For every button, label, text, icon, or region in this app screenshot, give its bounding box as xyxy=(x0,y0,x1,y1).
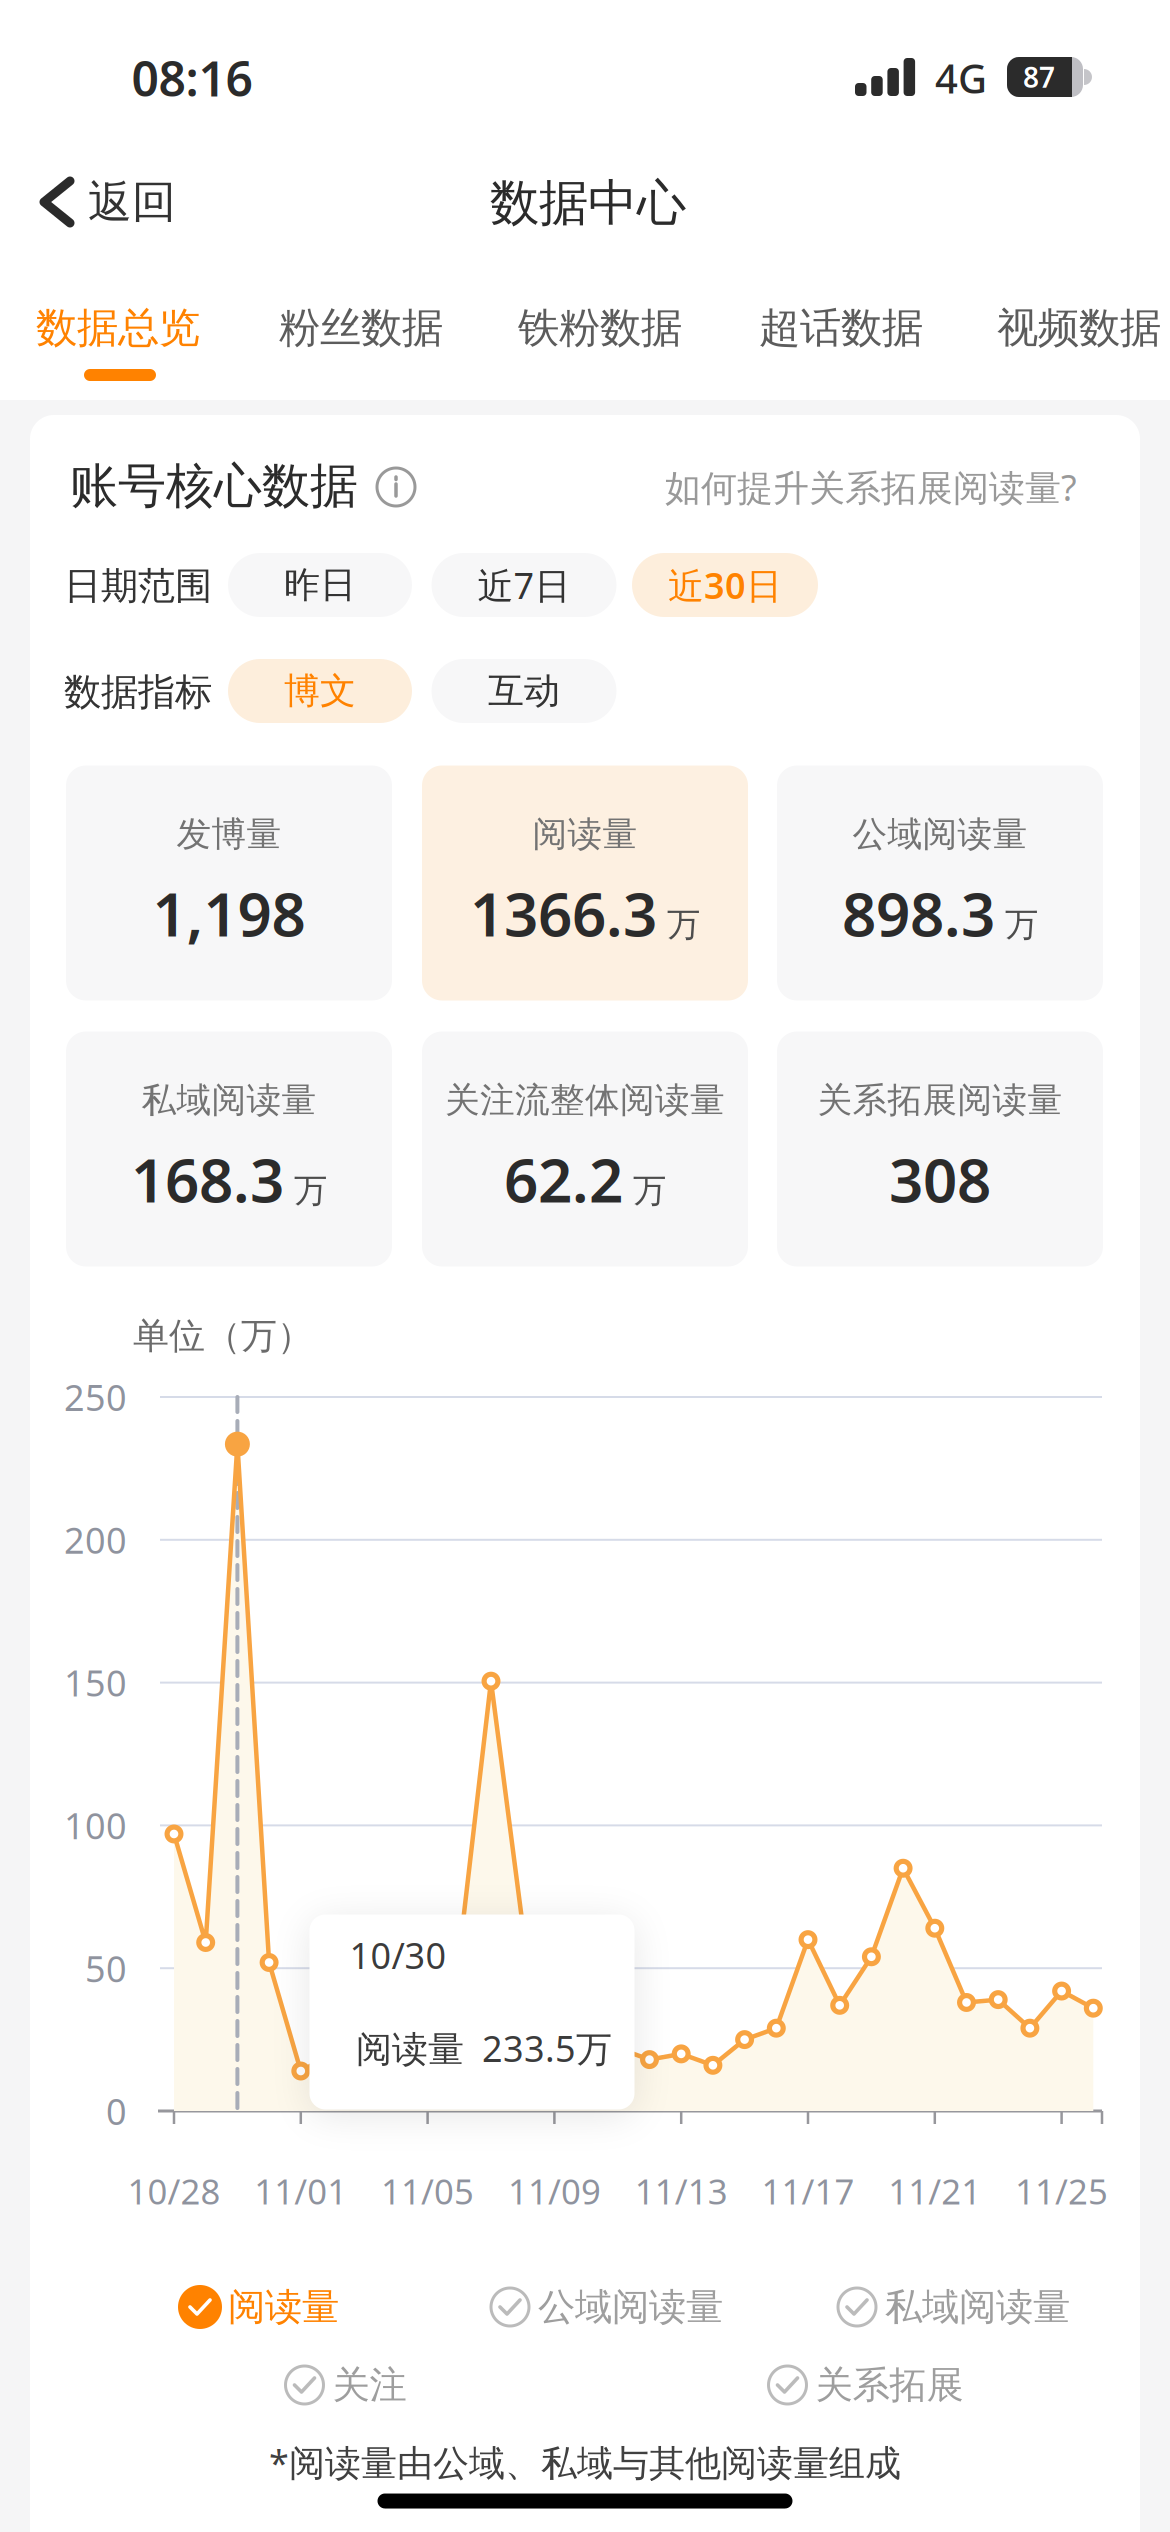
button[interactable]: 关注流整体阅读量 xyxy=(422,1031,748,1266)
staticText: 50 xyxy=(85,1944,127,1992)
staticText: 11/21 xyxy=(888,2168,981,2214)
staticText: 互动 xyxy=(488,669,560,713)
staticText: 日期范围 xyxy=(64,563,212,609)
staticText: 308 xyxy=(889,1139,991,1219)
staticText: 11/17 xyxy=(761,2168,854,2214)
staticText: 博文 xyxy=(284,669,356,713)
staticText: 数据中心 xyxy=(490,173,686,233)
staticText: 87 xyxy=(1023,58,1055,96)
staticText: 私域阅读量 xyxy=(885,2284,1070,2330)
staticText: 11/01 xyxy=(254,2168,347,2214)
staticText: 168.3 xyxy=(131,1139,284,1219)
button[interactable]: 关系拓展阅读量 xyxy=(777,1031,1103,1266)
staticText: 数据总览 xyxy=(36,303,200,353)
staticText: 1,198 xyxy=(152,873,305,953)
button[interactable]: 数据总览 xyxy=(18,283,218,373)
staticText: 阅读量 xyxy=(228,2284,339,2330)
button[interactable]: 阅读量 xyxy=(177,2284,339,2330)
staticText: 898.3 xyxy=(842,873,995,953)
staticText: 0 xyxy=(106,2087,127,2135)
button[interactable]: 昨日 xyxy=(228,553,412,617)
button[interactable]: 关系拓展 xyxy=(764,2362,963,2408)
staticText: 近30日 xyxy=(668,561,782,609)
staticText: 10/28 xyxy=(127,2168,220,2214)
staticText: 关系拓展 xyxy=(815,2362,963,2408)
staticText: 近7日 xyxy=(477,561,570,609)
button[interactable]: 核心数据说明 xyxy=(374,465,418,509)
staticText: 关系拓展阅读量 xyxy=(817,1079,1062,1121)
button[interactable]: 返回 xyxy=(18,172,198,232)
staticText: 私域阅读量 xyxy=(141,1079,316,1121)
staticText: 万 xyxy=(633,1170,666,1211)
staticText: 返回 xyxy=(88,175,176,229)
staticText: 10/30 xyxy=(349,1931,446,1979)
staticText: 公域阅读量 xyxy=(852,813,1027,855)
button[interactable]: 互动 xyxy=(431,659,616,723)
button[interactable]: 博文 xyxy=(228,659,412,723)
staticText: 200 xyxy=(64,1516,127,1564)
staticText: 视频数据 xyxy=(997,303,1161,353)
button[interactable]: 近7日 xyxy=(431,553,616,617)
staticText: 铁粉数据 xyxy=(518,303,682,353)
button[interactable]: 超话数据 xyxy=(741,283,941,373)
staticText: 4G xyxy=(935,51,987,104)
staticText: 62.2 xyxy=(504,1139,623,1219)
button[interactable]: 粉丝数据 xyxy=(261,283,461,373)
staticText: *阅读量由公域、私域与其他阅读量组成 xyxy=(269,2438,901,2486)
staticText: 关注 xyxy=(332,2362,406,2408)
staticText: 1366.3 xyxy=(470,873,657,953)
staticText: 11/13 xyxy=(635,2168,728,2214)
staticText: 万 xyxy=(667,904,700,945)
staticText: 11/09 xyxy=(508,2168,601,2214)
staticText: 万 xyxy=(294,1170,327,1211)
button[interactable]: 公域阅读量 xyxy=(777,765,1103,1000)
button[interactable]: 私域阅读量 xyxy=(66,1031,392,1266)
button[interactable]: 关注 xyxy=(281,2362,406,2408)
staticText: 超话数据 xyxy=(759,303,923,353)
staticText: 发博量 xyxy=(176,813,281,855)
staticText: 单位（万） xyxy=(133,1314,313,1358)
staticText: 11/05 xyxy=(381,2168,474,2214)
staticText: 08:16 xyxy=(131,46,252,110)
staticText: 万 xyxy=(1005,904,1038,945)
button[interactable]: 发博量 xyxy=(66,765,392,1000)
staticText: 250 xyxy=(64,1373,127,1421)
button[interactable]: 公域阅读量 xyxy=(487,2284,723,2330)
staticText: 如何提升关系拓展阅读量? xyxy=(665,463,1077,511)
button[interactable]: 近30日 xyxy=(632,553,818,617)
button[interactable]: 私域阅读量 xyxy=(834,2284,1070,2330)
staticText: 账号核心数据 xyxy=(70,456,358,515)
button[interactable]: 阅读量 xyxy=(422,765,748,1000)
staticText: 阅读量 233.5万 xyxy=(356,2024,612,2072)
staticText: 昨日 xyxy=(284,563,356,607)
button[interactable]: 视频数据 xyxy=(979,283,1170,373)
staticText: 11/25 xyxy=(1015,2168,1108,2214)
staticText: 100 xyxy=(64,1801,127,1849)
staticText: 阅读量 xyxy=(532,813,637,855)
button[interactable]: 如何提升关系拓展阅读量? xyxy=(665,457,1077,517)
staticText: 关注流整体阅读量 xyxy=(445,1079,725,1121)
staticText: 公域阅读量 xyxy=(538,2284,723,2330)
staticText: 150 xyxy=(64,1659,127,1706)
staticText: 粉丝数据 xyxy=(279,303,443,353)
button[interactable]: 铁粉数据 xyxy=(500,283,700,373)
staticText: 数据指标 xyxy=(64,669,212,715)
